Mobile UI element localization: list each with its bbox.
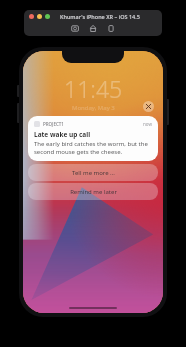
staticText: Tell me more ...	[72, 169, 115, 177]
staticText: Late wake up call	[34, 130, 91, 139]
button[interactable]: Rotate	[107, 24, 116, 33]
button[interactable]: Remind me later	[28, 183, 158, 200]
staticText: The early bird catches the worm, but the…	[34, 140, 152, 156]
staticText: PROJECT1	[43, 121, 64, 127]
staticText: Monday, May 3	[72, 104, 115, 112]
staticText: now	[143, 121, 152, 127]
button[interactable]: Home	[89, 24, 98, 33]
staticText: Remind me later	[70, 188, 117, 196]
button[interactable]: Close	[29, 14, 34, 19]
button[interactable]: PROJECT1	[28, 116, 158, 161]
staticText: 11:45	[64, 73, 123, 104]
staticText: Khumar's iPhone XR – iOS 14.5	[60, 13, 140, 20]
button[interactable]: Tell me more ...	[28, 164, 158, 181]
button[interactable]: Zoom	[45, 14, 50, 19]
button[interactable]: Screenshot	[71, 24, 80, 33]
button[interactable]: Clear notification	[143, 101, 154, 112]
button[interactable]: Minimize	[37, 14, 42, 19]
